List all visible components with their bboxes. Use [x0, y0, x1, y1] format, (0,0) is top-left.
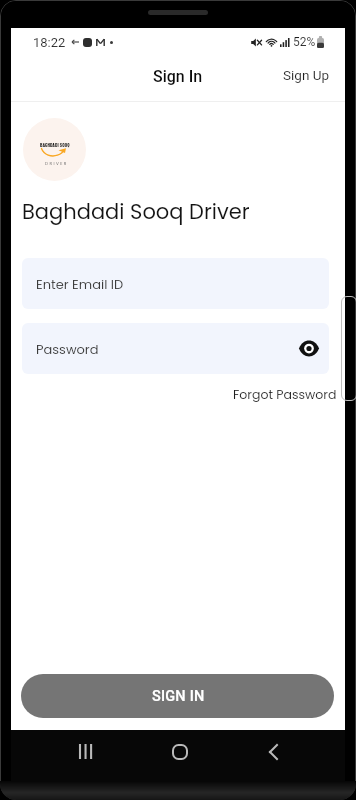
button[interactable]: Password — [22, 323, 329, 374]
staticText: DRIVER — [45, 161, 68, 167]
staticText: SIGN IN — [152, 688, 205, 705]
staticText: Sign Up — [283, 67, 330, 83]
staticText: Sign In — [153, 67, 203, 86]
staticText: 18:22 — [33, 35, 66, 50]
button[interactable]: SIGN IN — [21, 674, 334, 718]
button[interactable]: Enter Email ID — [22, 258, 329, 309]
button[interactable]: Recent apps — [62, 729, 107, 774]
staticText: BAGHDADI SOOQ — [40, 142, 70, 148]
staticText: Password — [36, 340, 99, 358]
staticText: 52% — [293, 35, 316, 49]
staticText: Baghdadi Sooq Driver — [22, 197, 250, 226]
button[interactable]: Back — [251, 729, 296, 774]
button[interactable]: Show password — [299, 342, 319, 355]
staticText: Forgot Password — [233, 386, 337, 403]
button[interactable]: Forgot Password — [231, 380, 339, 409]
button[interactable]: Home — [157, 729, 202, 774]
staticText: Enter Email ID — [36, 275, 124, 293]
button[interactable]: Sign Up — [269, 57, 345, 93]
